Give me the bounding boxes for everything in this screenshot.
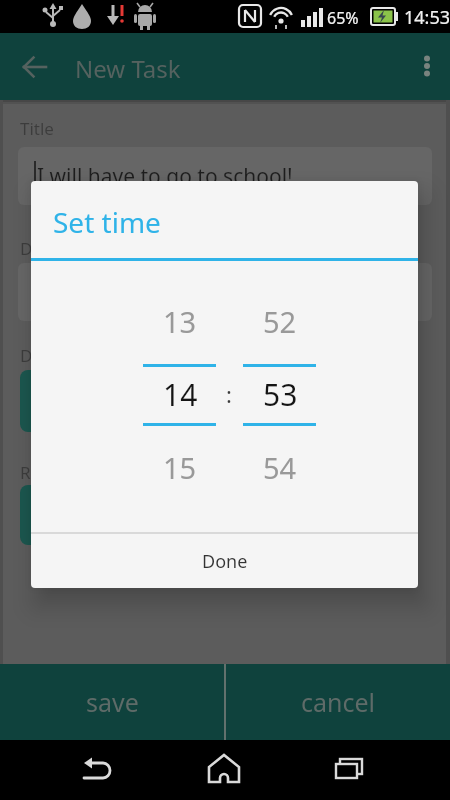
- staticText: 65%: [327, 7, 359, 29]
- button[interactable]: cancel: [226, 664, 450, 740]
- button[interactable]: [419, 50, 435, 82]
- button[interactable]: save: [0, 664, 224, 740]
- staticText: :: [226, 379, 232, 409]
- button[interactable]: [20, 370, 200, 432]
- button[interactable]: [205, 753, 243, 785]
- staticText: Reminder: [20, 461, 99, 484]
- staticText: 14: [163, 374, 198, 415]
- button[interactable]: [22, 54, 48, 80]
- staticText: 52: [263, 302, 297, 341]
- staticText: 13: [163, 302, 197, 341]
- staticText: Done: [202, 549, 248, 574]
- staticText: save: [86, 685, 139, 719]
- staticText: Set time: [53, 203, 161, 241]
- staticText: 53: [263, 374, 298, 415]
- staticText: Title: [20, 117, 54, 140]
- staticText: cancel: [301, 685, 376, 719]
- staticText: Description: [20, 237, 112, 260]
- staticText: I will have to go to school!: [37, 162, 293, 191]
- button[interactable]: [82, 755, 116, 785]
- staticText: 15: [163, 448, 197, 487]
- button[interactable]: [333, 757, 365, 785]
- staticText: 54: [263, 448, 297, 487]
- staticText: New Task: [75, 52, 181, 85]
- staticText: Date: [20, 344, 58, 367]
- button[interactable]: Done: [31, 534, 418, 588]
- staticText: 14:53: [404, 5, 450, 30]
- button[interactable]: [20, 485, 200, 545]
